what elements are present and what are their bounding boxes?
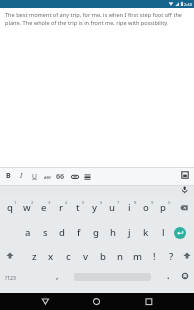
staticText: . [167, 269, 170, 281]
button[interactable]: o [136, 200, 156, 214]
staticText: l [162, 226, 165, 239]
staticText: ! [153, 250, 156, 263]
button[interactable]: r [51, 200, 71, 214]
button[interactable]: e [34, 200, 54, 214]
button[interactable]: v [76, 249, 96, 263]
staticText: 1 [14, 200, 17, 206]
button[interactable] [174, 227, 186, 239]
staticText: w [23, 201, 31, 214]
staticText: 8 [134, 200, 137, 206]
button[interactable]: n [110, 249, 130, 263]
staticText: B [6, 171, 11, 181]
staticText: g [93, 226, 99, 239]
staticText: o [143, 201, 149, 214]
button[interactable]: i [119, 200, 139, 214]
button[interactable]: d [52, 225, 72, 239]
button[interactable] [92, 298, 101, 306]
staticText: 4 [65, 200, 68, 206]
button[interactable] [181, 272, 189, 280]
button[interactable]: z [24, 249, 44, 263]
staticText: r [59, 201, 64, 214]
button[interactable]: f [69, 225, 89, 239]
button[interactable]: The best moment of any trip, for me, is … [0, 8, 194, 167]
button[interactable] [6, 252, 14, 260]
staticText: h [110, 226, 116, 239]
staticText: i [128, 201, 131, 214]
staticText: ?123 [5, 275, 16, 282]
button[interactable]: h [103, 225, 123, 239]
button[interactable]: g [86, 225, 106, 239]
button[interactable]: a [18, 225, 38, 239]
staticText: 2:40 [184, 2, 192, 7]
button[interactable]: ?123 [0, 273, 20, 283]
staticText: t [76, 201, 80, 214]
button[interactable]: ? [161, 249, 181, 263]
staticText: c [66, 250, 71, 263]
button[interactable]: q [0, 200, 20, 214]
staticText: The best moment of any trip, for me, is … [5, 11, 183, 26]
staticText: u [109, 201, 115, 214]
staticText: d [59, 226, 65, 239]
staticText: m [133, 250, 142, 263]
staticText: j [128, 226, 131, 239]
button[interactable]: l [153, 225, 173, 239]
staticText: , [56, 269, 59, 281]
button[interactable]: B [0, 171, 18, 181]
staticText: ABC [44, 175, 52, 180]
staticText: a [25, 226, 31, 239]
staticText: b [100, 250, 106, 263]
staticText: s [43, 226, 48, 239]
button[interactable]: . [158, 268, 178, 282]
button[interactable] [41, 298, 50, 306]
staticText: e [41, 201, 47, 214]
staticText: 3 [48, 200, 51, 206]
staticText: U [32, 172, 37, 181]
button[interactable]: w [17, 200, 37, 214]
staticText: 7 [117, 200, 120, 206]
button[interactable]: k [136, 225, 156, 239]
staticText: 9 [151, 200, 154, 206]
button[interactable]: U [24, 171, 44, 181]
staticText: y [92, 201, 98, 214]
button[interactable]: c [58, 249, 78, 263]
button[interactable]: u [102, 200, 122, 214]
staticText: n [117, 250, 123, 263]
button[interactable]: p [153, 200, 173, 214]
button[interactable] [181, 186, 188, 194]
staticText: 6 [100, 200, 103, 206]
button[interactable] [84, 174, 91, 181]
button[interactable]: m [127, 249, 147, 263]
staticText: I [20, 171, 23, 181]
staticText: z [32, 250, 37, 263]
button[interactable] [71, 174, 79, 180]
staticText: f [77, 226, 81, 239]
button[interactable]: ! [144, 249, 164, 263]
staticText: q [7, 201, 13, 214]
button[interactable] [181, 171, 189, 179]
button[interactable]: s [35, 225, 55, 239]
staticText: v [83, 250, 89, 263]
staticText: 66 [56, 171, 65, 181]
button[interactable]: I [11, 171, 31, 181]
button[interactable] [180, 205, 188, 211]
button[interactable]: j [119, 225, 139, 239]
staticText: k [143, 226, 149, 239]
button[interactable]: t [68, 200, 88, 214]
button[interactable]: ABC [38, 172, 58, 182]
staticText: ? [169, 250, 174, 263]
button[interactable]: y [85, 200, 105, 214]
button[interactable]: b [93, 249, 113, 263]
staticText: 2 [31, 200, 34, 206]
staticText: 5 [82, 200, 85, 206]
staticText: x [48, 250, 54, 263]
button[interactable] [145, 298, 153, 306]
button[interactable]: x [41, 249, 61, 263]
staticText: p [160, 201, 166, 214]
button[interactable]: , [47, 268, 67, 282]
button[interactable] [183, 252, 191, 260]
staticText: 0 [168, 200, 171, 206]
button[interactable]: 66 [53, 171, 67, 181]
